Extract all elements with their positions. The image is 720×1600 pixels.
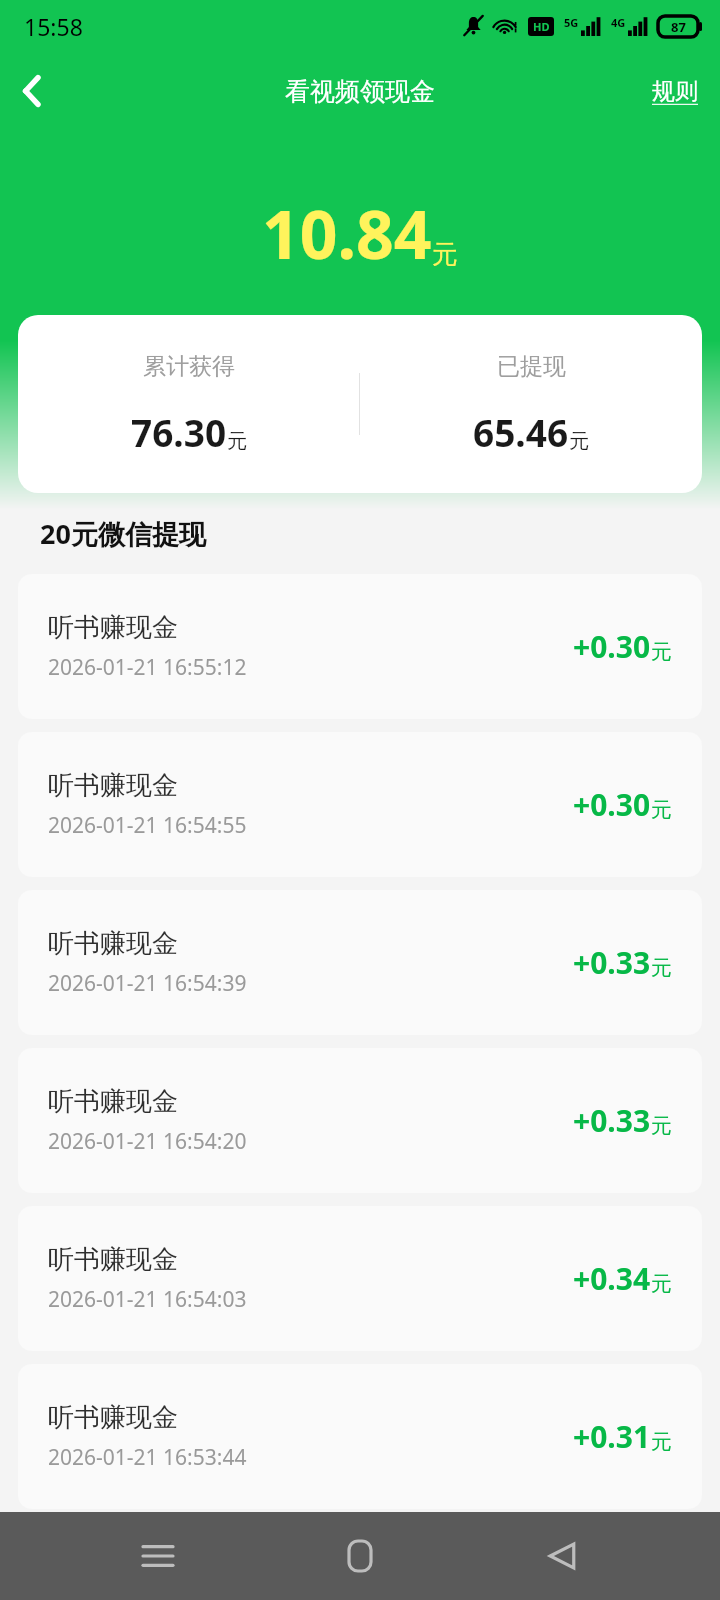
staticText: 2026-01-21 16:54:20 (48, 1127, 247, 1156)
staticText: 听书赚现金 (48, 1085, 178, 1118)
staticText: 累计获得 (143, 352, 235, 381)
staticText: 20元微信提现 (40, 515, 206, 552)
button[interactable]: 听书赚现金 (18, 890, 702, 1035)
staticText: 听书赚现金 (48, 769, 178, 802)
staticText: 听书赚现金 (48, 927, 178, 960)
staticText: 5G (564, 15, 579, 30)
staticText: +0.34 (573, 1258, 651, 1299)
staticText: 听书赚现金 (48, 1401, 178, 1434)
staticText: 2026-01-21 16:54:55 (48, 811, 247, 840)
staticText: 10.84 (262, 188, 432, 278)
staticText: 元 (651, 639, 672, 665)
staticText: 元 (651, 1271, 672, 1297)
staticText: 元 (651, 797, 672, 823)
staticText: 65.46 (473, 407, 569, 457)
staticText: 元 (569, 429, 589, 454)
button[interactable]: Home (316, 1512, 404, 1600)
staticText: 2026-01-21 16:54:03 (48, 1285, 247, 1314)
staticText: 2026-01-21 16:53:44 (48, 1443, 247, 1472)
button[interactable]: Back (518, 1512, 606, 1600)
button[interactable]: 听书赚现金 (18, 1048, 702, 1193)
staticText: 看视频领现金 (285, 76, 435, 107)
staticText: +0.30 (573, 784, 651, 825)
staticText: 听书赚现金 (48, 1243, 178, 1276)
staticText: 76.30 (131, 407, 227, 457)
staticText: 元 (651, 955, 672, 981)
staticText: 4G (611, 15, 626, 30)
staticText: 2026-01-21 16:55:12 (48, 653, 247, 682)
staticText: 规则 (652, 77, 698, 106)
button[interactable]: 听书赚现金 (18, 1364, 702, 1509)
button[interactable]: Back (0, 59, 64, 123)
button[interactable]: 听书赚现金 (18, 574, 702, 719)
staticText: 87 (671, 18, 686, 36)
staticText: 元 (651, 1429, 672, 1455)
staticText: +0.30 (573, 626, 651, 667)
button[interactable]: 听书赚现金 (18, 1206, 702, 1351)
staticText: 2026-01-21 16:54:39 (48, 969, 247, 998)
button[interactable]: Recent apps (114, 1512, 202, 1600)
staticText: 元 (227, 429, 247, 454)
staticText: 元 (651, 1113, 672, 1139)
staticText: HD (533, 19, 550, 34)
staticText: 15:58 (24, 11, 83, 42)
staticText: +0.33 (573, 1100, 651, 1141)
button[interactable]: 听书赚现金 (18, 732, 702, 877)
staticText: 听书赚现金 (48, 611, 178, 644)
button[interactable]: 规则 (630, 67, 720, 116)
staticText: 已提现 (497, 352, 566, 381)
staticText: +0.33 (573, 942, 651, 983)
staticText: +0.31 (573, 1416, 651, 1457)
staticText: 元 (432, 238, 458, 271)
